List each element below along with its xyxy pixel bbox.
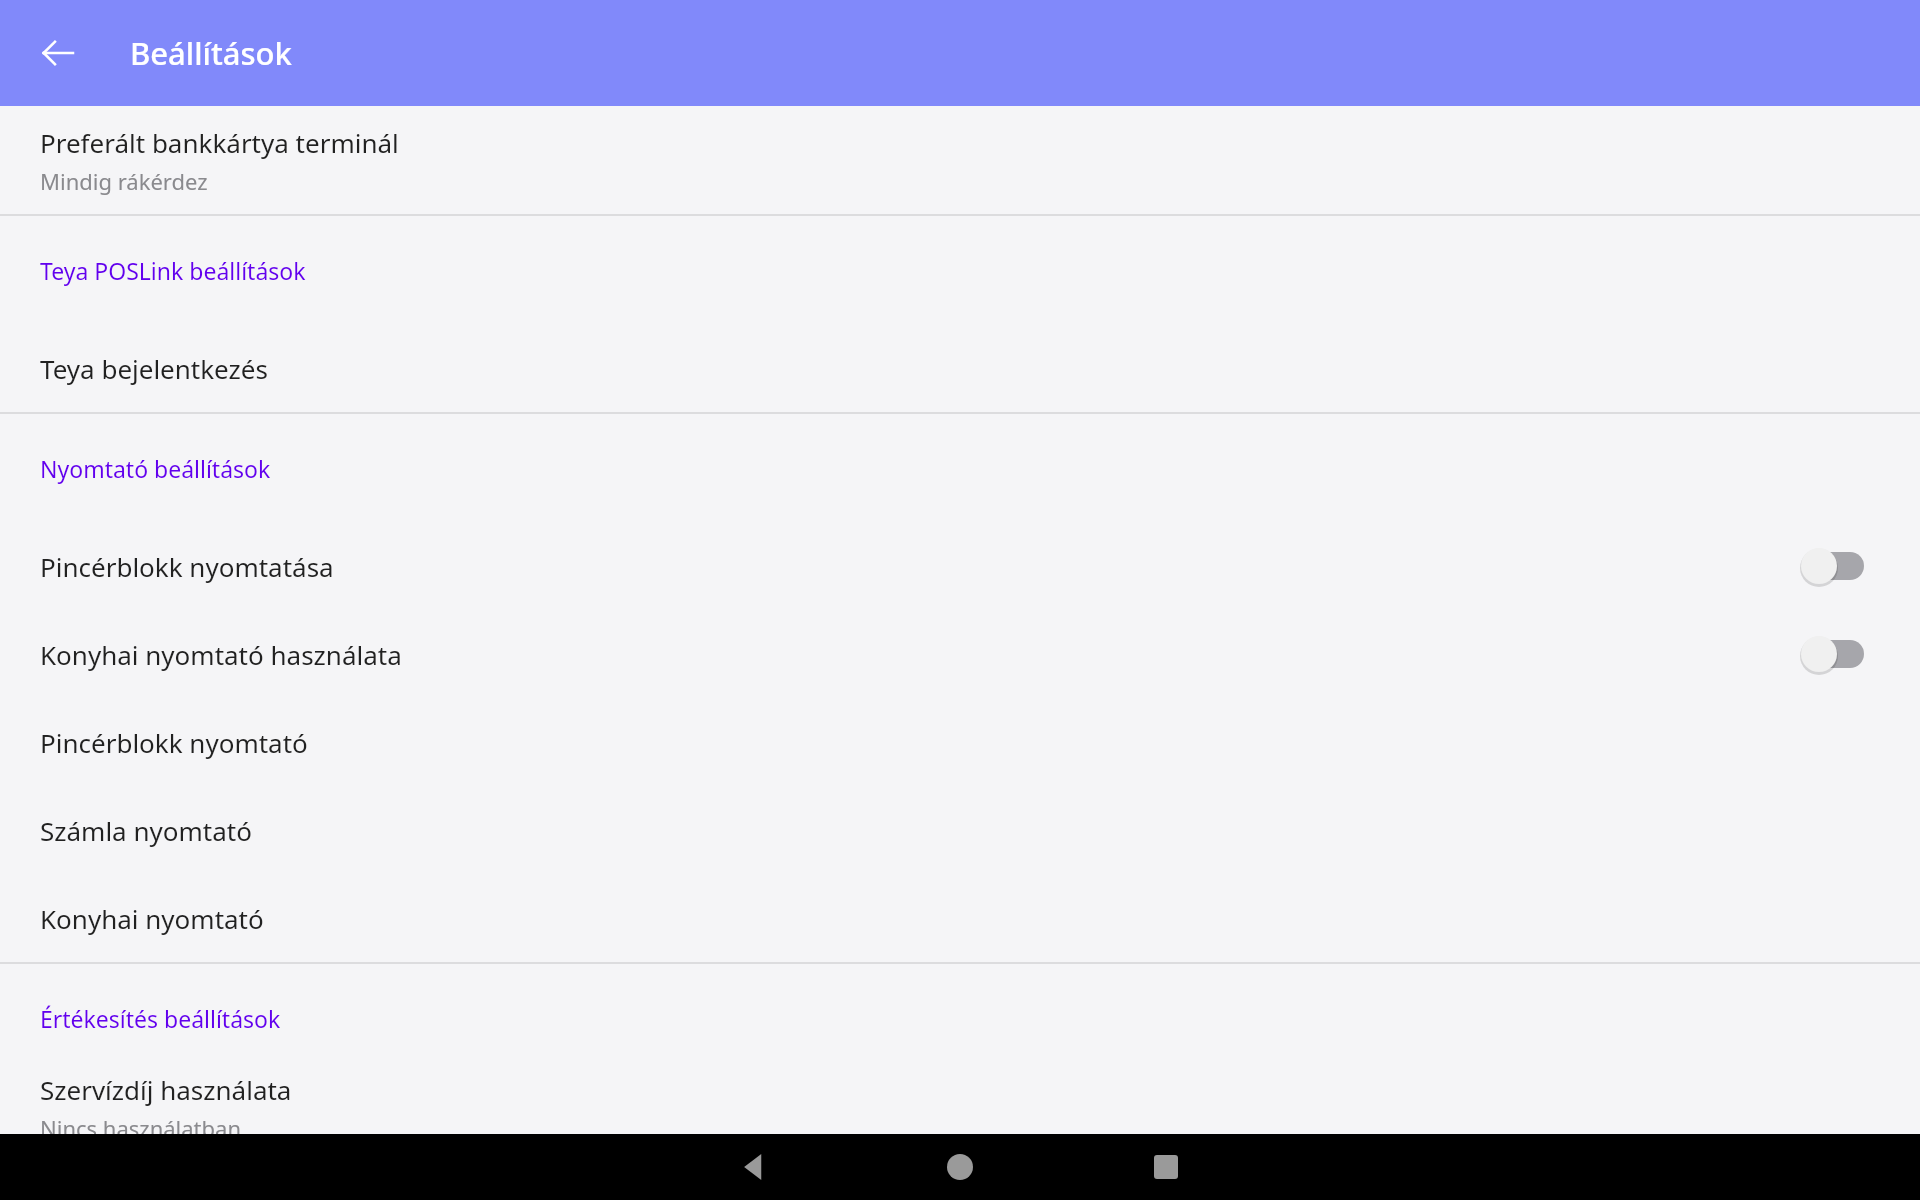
button[interactable]: Konyhai nyomtató xyxy=(0,874,1920,962)
button[interactable]: Teya bejelentkezés xyxy=(0,324,1920,412)
button[interactable]: Számla nyomtató xyxy=(0,786,1920,874)
staticText: Értékesítés beállítások xyxy=(40,1003,281,1034)
button[interactable]: Home xyxy=(927,1134,993,1200)
staticText: Nincs használatban xyxy=(40,1113,241,1134)
button[interactable]: Back xyxy=(26,21,90,85)
staticText: Pincérblokk nyomtató xyxy=(40,725,308,760)
staticText: Konyhai nyomtató xyxy=(40,901,264,936)
staticText: Szervízdíj használata xyxy=(40,1072,292,1107)
button[interactable]: Back xyxy=(721,1134,787,1200)
staticText: Teya bejelentkezés xyxy=(40,351,268,386)
button[interactable]: Pincérblokk nyomtatása xyxy=(0,522,1920,610)
staticText: Preferált bankkártya terminál xyxy=(40,125,399,160)
staticText: Mindig rákérdez xyxy=(40,166,208,196)
staticText: Számla nyomtató xyxy=(40,813,252,848)
staticText: Nyomtató beállítások xyxy=(40,453,271,484)
staticText: Beállítások xyxy=(130,32,292,74)
button[interactable]: Szervízdíj használata xyxy=(0,1072,1920,1134)
staticText: Teya POSLink beállítások xyxy=(40,255,306,286)
button[interactable]: Pincérblokk nyomtató xyxy=(0,698,1920,786)
staticText: Pincérblokk nyomtatása xyxy=(40,549,1800,584)
staticText: Konyhai nyomtató használata xyxy=(40,637,1800,672)
button[interactable]: Konyhai nyomtató használata xyxy=(0,610,1920,698)
button[interactable]: Preferált bankkártya terminál xyxy=(0,106,1920,214)
button[interactable]: Recent apps xyxy=(1133,1134,1199,1200)
